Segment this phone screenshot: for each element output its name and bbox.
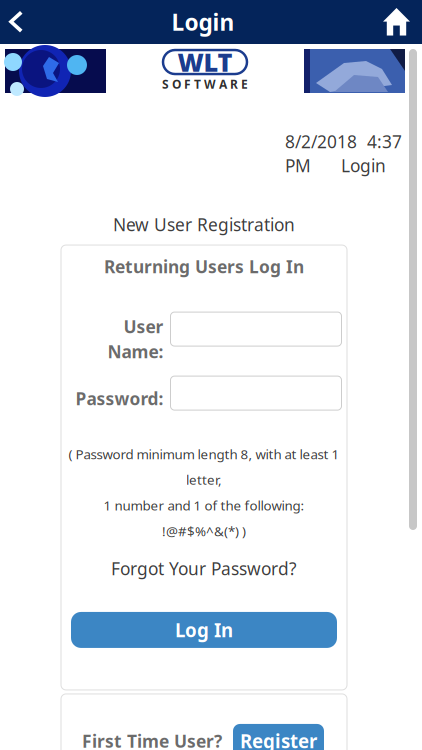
staticText: Log In (175, 618, 233, 642)
staticText: 1 number and 1 of the following: (103, 496, 304, 514)
staticText: New User Registration (113, 213, 295, 236)
staticText: Password: (75, 387, 163, 410)
button[interactable]: Back (0, 0, 39, 44)
button[interactable]: Home (367, 0, 422, 44)
staticText: Returning Users Log In (104, 255, 304, 278)
staticText: ( Password minimum length 8, with at lea… (68, 445, 339, 463)
staticText: !@#$%^&(*) ) (162, 522, 246, 540)
button[interactable]: Log In (71, 612, 337, 648)
staticText: letter, (186, 471, 222, 488)
staticText: S O F T W A R E (162, 76, 248, 92)
button[interactable]: Register (233, 724, 324, 750)
staticText: Login (171, 7, 234, 37)
staticText: First Time User? (82, 729, 222, 750)
staticText: PM Login (285, 154, 386, 177)
staticText: Name: (107, 340, 163, 363)
staticText: Register (240, 729, 317, 750)
staticText: 8/2/2018 4:37 (285, 130, 402, 153)
staticText: User (123, 315, 163, 338)
staticText: WLT (177, 45, 232, 79)
staticText: Forgot Your Password? (111, 557, 297, 580)
